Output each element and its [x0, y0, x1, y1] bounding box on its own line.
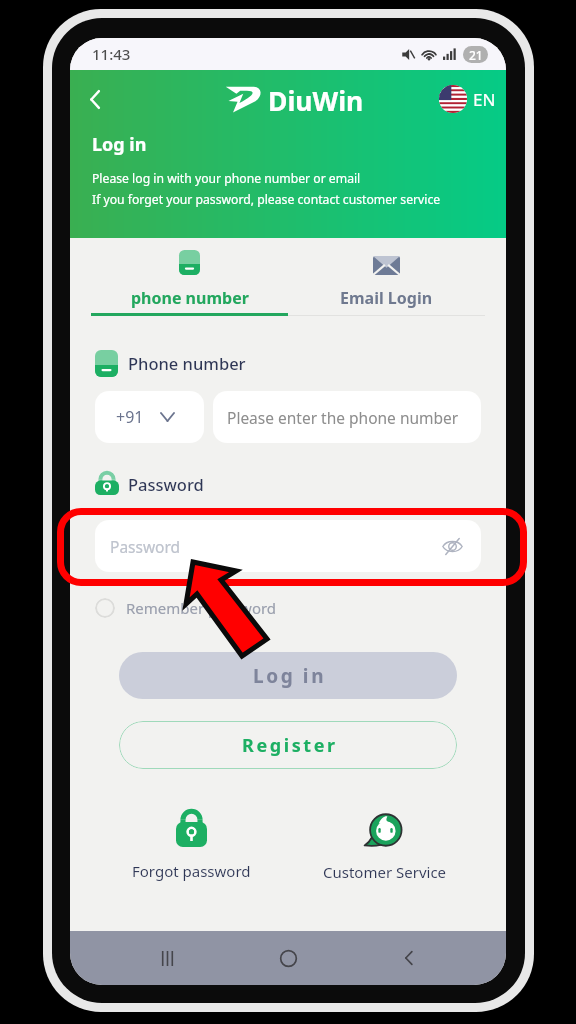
- staticText: Email Login: [340, 287, 433, 309]
- button[interactable]: +91: [95, 391, 204, 443]
- button[interactable]: Please enter the phone number: [213, 391, 481, 443]
- button[interactable]: Home: [264, 934, 312, 982]
- button[interactable]: Remember password: [95, 598, 277, 618]
- button[interactable]: Register: [119, 721, 457, 769]
- staticText: Log in: [92, 132, 147, 157]
- button[interactable]: EN: [437, 83, 498, 115]
- button[interactable]: Forgot password: [95, 809, 288, 881]
- button[interactable]: Password: [95, 520, 481, 572]
- button[interactable]: Log in: [119, 652, 457, 699]
- button[interactable]: Show password: [440, 534, 464, 558]
- staticText: 11:43: [92, 44, 131, 64]
- button[interactable]: Recents: [143, 934, 191, 982]
- staticText: Password: [110, 536, 181, 557]
- staticText: +91: [116, 406, 144, 428]
- button[interactable]: Email Login: [288, 238, 485, 316]
- button[interactable]: Back: [385, 934, 433, 982]
- staticText: Password: [128, 473, 204, 495]
- staticText: Customer Service: [323, 862, 447, 882]
- button[interactable]: Back: [78, 82, 112, 116]
- staticText: Please enter the phone number: [227, 407, 459, 428]
- staticText: Forgot password: [132, 861, 251, 881]
- staticText: Please log in with your phone number or …: [92, 170, 361, 187]
- staticText: If you forget your password, please cont…: [92, 191, 441, 208]
- button[interactable]: Customer Service: [288, 809, 481, 882]
- button[interactable]: phone number: [91, 238, 288, 316]
- staticText: DiuWin: [268, 83, 364, 115]
- staticText: Remember password: [126, 598, 277, 618]
- staticText: Log in: [253, 663, 327, 689]
- staticText: EN: [473, 88, 496, 111]
- staticText: phone number: [131, 287, 249, 309]
- staticText: Phone number: [128, 352, 246, 374]
- staticText: 21: [469, 47, 483, 63]
- staticText: Register: [242, 733, 338, 758]
